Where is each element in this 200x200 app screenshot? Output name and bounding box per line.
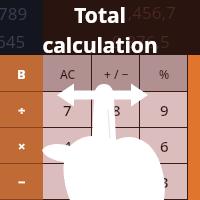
staticText: ÷ [18, 101, 26, 119]
button[interactable]: 6 [140, 128, 188, 164]
staticText: 8 [112, 100, 121, 120]
staticText: 4 [63, 136, 72, 156]
button[interactable]: 7 [43, 92, 92, 128]
staticText: % [159, 66, 170, 82]
button[interactable]: ÷ [0, 92, 43, 128]
staticText: calculation [42, 31, 158, 55]
staticText: 9 [160, 100, 169, 120]
staticText: 1,456,7 [118, 1, 176, 24]
button[interactable]: − [0, 164, 43, 200]
staticText: 6 [160, 136, 169, 156]
staticText: 5 [112, 136, 121, 156]
button[interactable]: 3 [140, 164, 188, 200]
staticText: 1 [63, 172, 72, 192]
staticText: B [17, 65, 26, 83]
staticText: × [18, 137, 26, 155]
staticText: AC [60, 66, 76, 82]
button[interactable]: 9 [140, 92, 188, 128]
button[interactable]: 4 [43, 128, 92, 164]
button[interactable]: 8 [92, 92, 140, 128]
button[interactable]: % [140, 55, 188, 92]
staticText: + / − [104, 66, 129, 82]
button[interactable]: + / − [92, 55, 140, 92]
staticText: − [18, 173, 26, 191]
staticText: 9,876,5 [112, 30, 170, 53]
button[interactable]: 1 [43, 164, 92, 200]
staticText: 789 [0, 2, 28, 25]
button[interactable]: AC [43, 55, 92, 92]
staticText: Total [74, 1, 126, 30]
staticText: 7 [63, 100, 72, 120]
staticText: 645 [0, 30, 26, 53]
button[interactable]: × [0, 128, 43, 164]
staticText: 3 [160, 172, 169, 192]
button[interactable]: 5 [92, 128, 140, 164]
button[interactable]: B [0, 55, 43, 92]
